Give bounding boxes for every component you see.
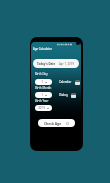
staticText: Dialog <box>59 93 68 97</box>
staticText: Birth Day <box>35 72 48 76</box>
staticText: Apr 1, 2019 <box>59 62 74 66</box>
staticText: 2019 <box>38 106 45 110</box>
staticText: Calendar <box>59 80 72 84</box>
other: Calendar <box>75 80 80 85</box>
button[interactable]: Calendar <box>59 79 80 85</box>
staticText: Birth Year <box>35 99 49 103</box>
staticText: Age Calculator <box>33 47 52 51</box>
button[interactable]: Dialog <box>59 92 76 98</box>
staticText: Birth Month <box>35 86 52 90</box>
staticText: 1 <box>41 93 43 97</box>
staticText: Today's Date <box>37 62 56 66</box>
button[interactable]: Today's Date <box>33 59 79 68</box>
other: Dialog <box>71 93 76 98</box>
button[interactable]: 1 <box>35 79 52 85</box>
button[interactable]: Check Age <box>38 119 75 127</box>
staticText: 1 <box>41 80 43 84</box>
button[interactable]: 2019 <box>35 105 52 111</box>
button[interactable]: 1 <box>35 92 52 98</box>
staticText: Check Age <box>44 121 62 125</box>
